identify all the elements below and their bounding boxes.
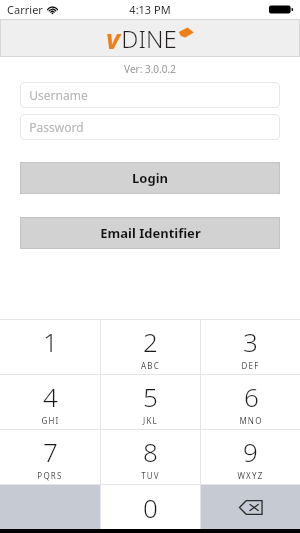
staticText: Username [29,87,88,103]
button[interactable]: 4 [0,375,100,429]
staticText: 1 [43,324,58,359]
staticText: WXYZ [237,470,264,481]
button[interactable]: Backspace [201,485,300,529]
staticText: Email Identifier [100,224,201,242]
staticText: v [106,20,120,57]
button[interactable]: 5 [101,375,200,429]
button[interactable]: Login [20,162,280,194]
staticText: TUV [141,470,160,481]
button[interactable]: 3 [201,320,300,374]
staticText: JKL [143,415,158,426]
staticText: 8 [143,434,158,469]
staticText: DINE [121,22,177,55]
button[interactable]: Username [20,82,280,108]
staticText: Password [29,119,84,135]
staticText: 0 [143,490,158,525]
staticText: 2 [143,324,158,359]
button[interactable]: 2 [101,320,200,374]
button[interactable]: 1 [0,320,100,374]
staticText: 9 [243,434,258,469]
staticText: 5 [143,379,158,414]
staticText: 3 [243,324,258,359]
staticText: Ver: 3.0.0.2 [124,62,176,76]
button[interactable]: 0 [101,485,200,529]
staticText: 6 [244,379,259,414]
staticText: Carrier [7,2,43,17]
staticText: PQRS [37,470,63,481]
staticText: DEF [241,360,260,371]
staticText: MNO [239,415,263,426]
button[interactable]: 7 [0,430,100,484]
staticText: 7 [43,434,58,469]
staticText: ABC [141,360,160,371]
button[interactable]: Password [20,114,280,140]
button[interactable]: 6 [201,375,300,429]
button[interactable]: 8 [101,430,200,484]
staticText: 4:13 PM [129,2,171,17]
staticText: 4 [43,379,58,414]
staticText: GHI [41,415,60,426]
button[interactable]: Email Identifier [20,217,280,249]
staticText: Login [132,169,168,187]
button[interactable]: 9 [201,430,300,484]
